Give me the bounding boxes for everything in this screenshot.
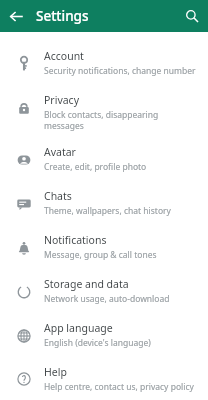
staticText: Account xyxy=(44,49,84,63)
staticText: Network usage, auto-download xyxy=(44,293,170,305)
button[interactable]: Notifications xyxy=(0,226,208,270)
staticText: Help centre, contact us, privacy policy xyxy=(44,381,194,393)
staticText: Settings xyxy=(36,7,89,25)
staticText: Create, edit, profile photo xyxy=(44,161,147,173)
button[interactable]: Storage and data xyxy=(0,270,208,314)
staticText: Security notifications, change number xyxy=(44,65,196,77)
button[interactable]: Avatar xyxy=(0,138,208,182)
button[interactable]: App language xyxy=(0,314,208,358)
staticText: App language xyxy=(44,321,113,335)
button[interactable]: Help xyxy=(0,358,208,400)
staticText: Chats xyxy=(44,189,72,203)
staticText: Message, group & call tones xyxy=(44,249,157,261)
button[interactable]: Search xyxy=(176,0,208,32)
button[interactable]: Back xyxy=(0,0,32,32)
staticText: Notifications xyxy=(44,233,107,247)
staticText: English (device's language) xyxy=(44,337,151,349)
button[interactable]: Privacy xyxy=(0,86,208,138)
staticText: Theme, wallpapers, chat history xyxy=(44,205,171,217)
staticText: Avatar xyxy=(44,145,76,159)
staticText: Storage and data xyxy=(44,277,129,291)
staticText: Help xyxy=(44,365,67,379)
staticText: Block contacts, disappearing messages xyxy=(44,109,198,131)
button[interactable]: Chats xyxy=(0,182,208,226)
button[interactable]: Account xyxy=(0,42,208,86)
staticText: Privacy xyxy=(44,93,80,107)
